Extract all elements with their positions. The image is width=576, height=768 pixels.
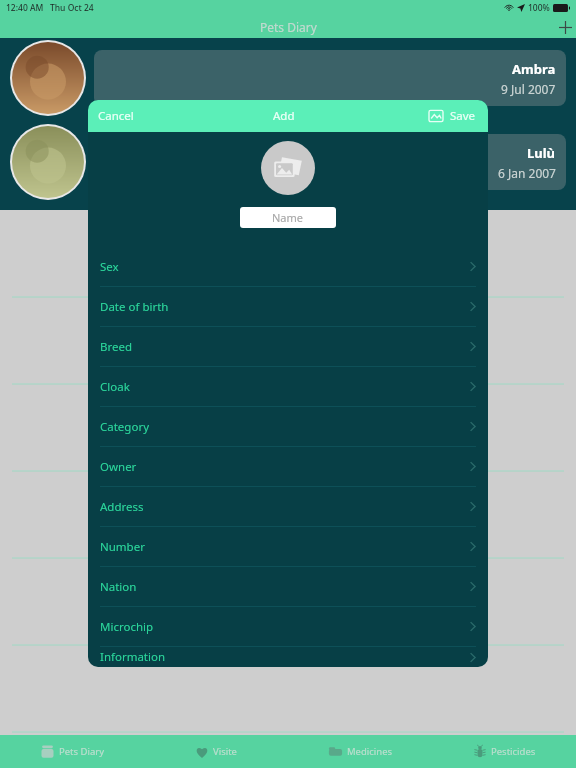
button[interactable]: Name bbox=[240, 207, 336, 228]
button[interactable]: Category bbox=[88, 407, 488, 447]
button[interactable]: Save bbox=[448, 100, 488, 132]
staticText: Owner bbox=[100, 459, 137, 475]
staticText: Microchip bbox=[100, 619, 154, 635]
staticText: 100% bbox=[528, 2, 550, 14]
button[interactable]: Sex bbox=[88, 247, 488, 287]
staticText: Medicines bbox=[347, 745, 393, 758]
button[interactable]: Pick photo bbox=[424, 104, 448, 128]
staticText: 12:40 AM bbox=[6, 2, 44, 14]
staticText: Information bbox=[100, 649, 166, 665]
staticText: Add bbox=[273, 108, 295, 124]
staticText: Visite bbox=[213, 745, 237, 758]
staticText: Cloak bbox=[100, 379, 130, 395]
staticText: Category bbox=[100, 419, 150, 435]
button[interactable]: Nation bbox=[88, 567, 488, 607]
staticText: Breed bbox=[100, 339, 133, 355]
button[interactable]: Information bbox=[88, 647, 488, 667]
button[interactable]: Visite bbox=[144, 735, 288, 768]
button[interactable]: Ambra bbox=[0, 38, 576, 118]
staticText: Address bbox=[100, 499, 144, 515]
button[interactable]: Date of birth bbox=[88, 287, 488, 327]
staticText: Sex bbox=[100, 259, 119, 275]
button[interactable]: Cloak bbox=[88, 367, 488, 407]
staticText: Pets Diary bbox=[260, 19, 317, 35]
button[interactable]: Add photo bbox=[261, 141, 315, 195]
button[interactable]: Lulù bbox=[0, 122, 576, 202]
staticText: Thu Oct 24 bbox=[50, 2, 94, 14]
staticText: Date of birth bbox=[100, 299, 169, 315]
staticText: Ambra bbox=[512, 60, 556, 78]
button[interactable]: Number bbox=[88, 527, 488, 567]
staticText: 9 Jul 2007 bbox=[501, 81, 556, 97]
staticText: 6 Jan 2007 bbox=[498, 165, 556, 181]
staticText: Lulù bbox=[527, 144, 556, 162]
button[interactable]: Pets Diary bbox=[0, 735, 144, 768]
staticText: Pesticides bbox=[491, 745, 536, 758]
staticText: Pets Diary bbox=[59, 745, 105, 758]
button[interactable]: Cancel bbox=[88, 100, 144, 132]
button[interactable]: Medicines bbox=[288, 735, 432, 768]
staticText: Number bbox=[100, 539, 145, 555]
staticText: Name bbox=[272, 210, 304, 225]
staticText: Cancel bbox=[98, 108, 134, 124]
button[interactable]: Pesticides bbox=[432, 735, 576, 768]
button[interactable]: Breed bbox=[88, 327, 488, 367]
staticText: Save bbox=[450, 108, 476, 124]
button[interactable]: Owner bbox=[88, 447, 488, 487]
button[interactable]: Address bbox=[88, 487, 488, 527]
staticText: Nation bbox=[100, 579, 137, 595]
button[interactable]: Add pet bbox=[554, 16, 576, 38]
button[interactable]: Microchip bbox=[88, 607, 488, 647]
